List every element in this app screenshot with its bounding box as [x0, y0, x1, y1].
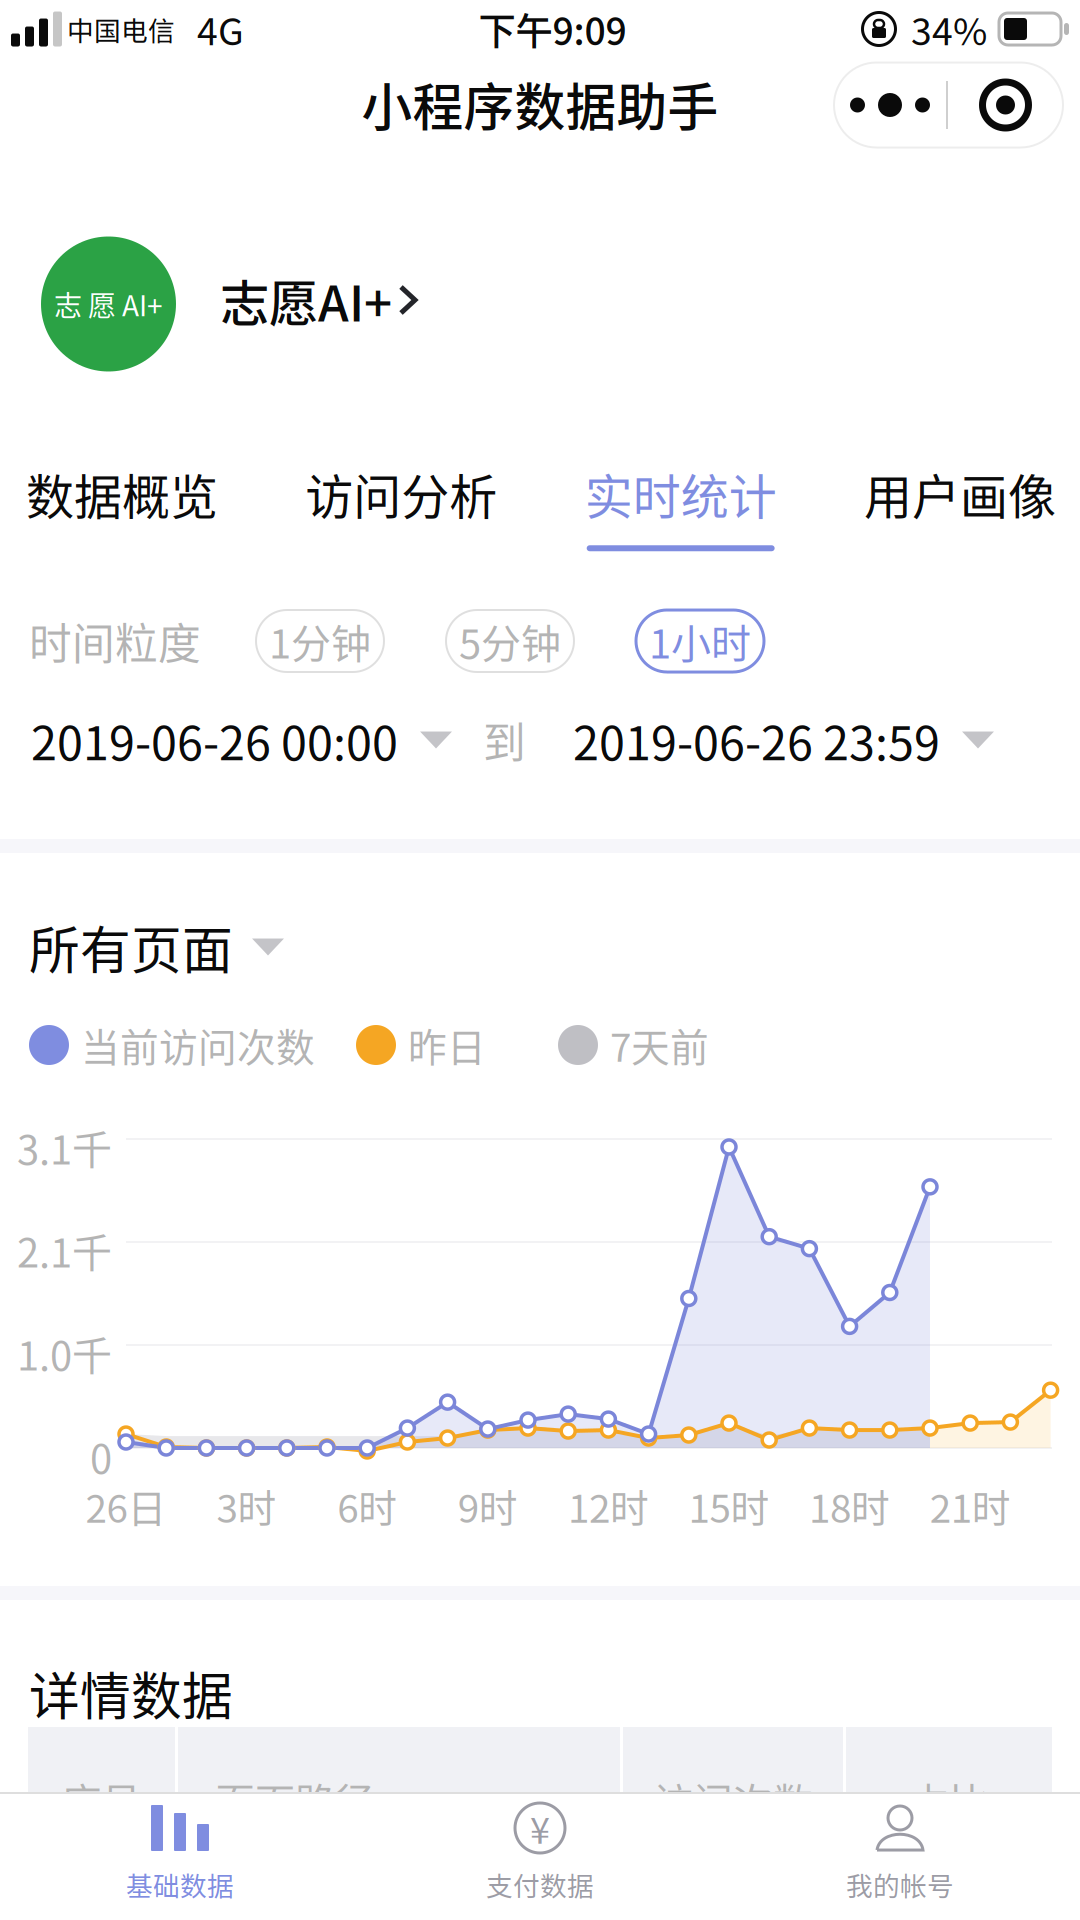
staticText: 0 [90, 1427, 112, 1485]
staticText: 1.0千 [17, 1324, 112, 1382]
button[interactable]: 基础数据 [0, 1805, 360, 1904]
staticText: 下午9:09 [478, 2, 626, 56]
staticText: 2.1千 [17, 1221, 112, 1279]
staticText: 占比 [909, 1771, 989, 1829]
button[interactable]: 我的帐号 [720, 1805, 1080, 1904]
staticText: 详情数据 [29, 1656, 233, 1730]
staticText: 当前访问次数 [81, 1017, 315, 1073]
staticText: 实时统计 [585, 459, 777, 528]
button[interactable]: 志 愿 AI+ [0, 160, 1080, 440]
button[interactable]: 所有页面 [29, 910, 284, 984]
staticText: 5分钟 [459, 612, 561, 670]
staticText: 访问分析 [305, 459, 497, 528]
button[interactable]: More options and close mini program [834, 62, 1063, 147]
button[interactable]: 2019-06-26 23:59 [573, 706, 994, 774]
staticText: 4G [197, 2, 244, 56]
staticText: 12时 [568, 1478, 649, 1534]
staticText: 基础数据 [126, 1865, 234, 1904]
button[interactable]: 5分钟 [446, 610, 574, 672]
button[interactable]: 2019-06-26 00:00 [31, 706, 452, 774]
staticText: 1分钟 [269, 612, 371, 670]
staticText: 序号 [61, 1771, 141, 1829]
button[interactable]: 访问分析 [305, 459, 497, 551]
staticText: 昨日 [408, 1017, 486, 1073]
staticText: 2019-06-26 23:59 [573, 706, 940, 774]
button[interactable]: 用户画像 [864, 459, 1056, 551]
staticText: 2019-06-26 00:00 [31, 706, 398, 774]
staticText: 3时 [217, 1478, 277, 1534]
staticText: 15时 [688, 1478, 769, 1534]
staticText: 志愿AI+ [220, 264, 392, 336]
staticText: 所有页面 [29, 910, 233, 984]
button[interactable]: 1分钟 [256, 610, 384, 672]
staticText: 页面路径 [215, 1771, 375, 1829]
staticText: 26日 [85, 1478, 166, 1534]
staticText: 9时 [458, 1478, 518, 1534]
staticText: 时间粒度 [29, 610, 201, 672]
staticText: 到 [483, 709, 526, 771]
staticText: 访问次数 [653, 1771, 813, 1829]
staticText: 用户画像 [864, 459, 1056, 528]
staticText: 6时 [337, 1478, 397, 1534]
staticText: 34% [911, 2, 987, 56]
staticText: 志 愿 AI+ [54, 284, 163, 324]
staticText: 支付数据 [486, 1865, 594, 1904]
staticText: ¥ [530, 1802, 550, 1854]
button[interactable]: ¥ [360, 1805, 720, 1904]
staticText: 我的帐号 [846, 1865, 954, 1904]
staticText: 7天前 [610, 1017, 709, 1073]
staticText: 21时 [930, 1478, 1011, 1534]
staticText: 小程序数据助手 [361, 67, 718, 141]
button[interactable]: 实时统计 [585, 459, 777, 551]
button[interactable]: 数据概览 [26, 459, 218, 551]
staticText: 中国电信 [67, 10, 175, 48]
button[interactable]: 1小时 [636, 610, 764, 672]
staticText: 数据概览 [26, 459, 218, 528]
staticText: 1小时 [649, 612, 751, 670]
staticText: 18时 [809, 1478, 890, 1534]
staticText: 3.1千 [17, 1118, 112, 1176]
